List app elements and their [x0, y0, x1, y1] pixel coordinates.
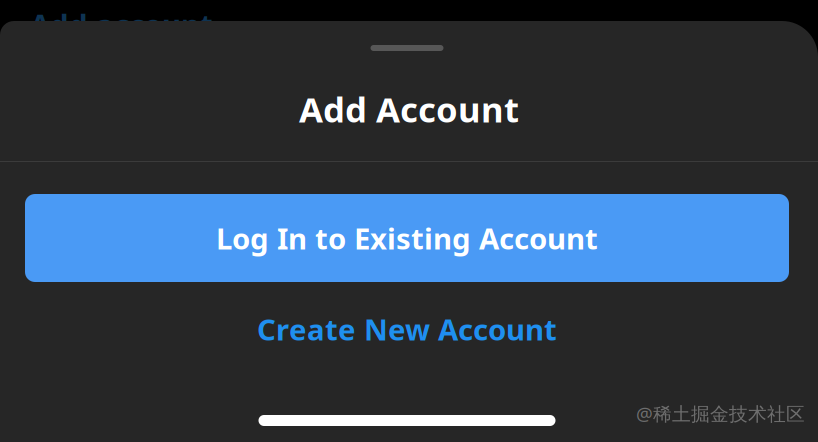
- staticText: Log In to Existing Account: [216, 218, 598, 257]
- staticText: Add Account: [299, 86, 519, 132]
- staticText: Add account: [30, 5, 213, 44]
- button[interactable]: Log In to Existing Account: [25, 194, 789, 282]
- staticText: Create New Account: [257, 309, 557, 348]
- staticText: @稀土掘金技术社区: [636, 401, 805, 426]
- button[interactable]: Create New Account: [25, 282, 789, 376]
